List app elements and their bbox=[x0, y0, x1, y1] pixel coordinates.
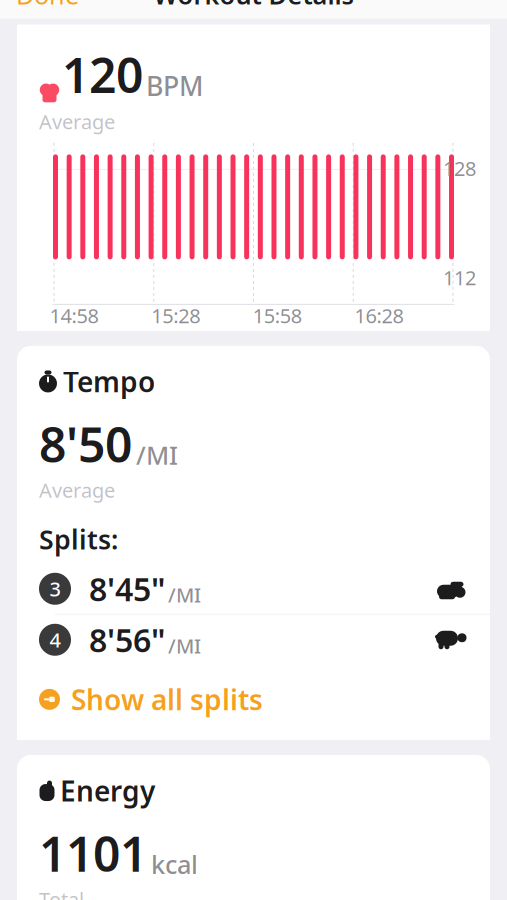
staticText: 15:28 bbox=[151, 302, 200, 329]
staticText: 8'56" bbox=[89, 618, 165, 661]
staticText: 16:28 bbox=[354, 302, 403, 329]
staticText: /MI bbox=[136, 438, 178, 472]
staticText: Total bbox=[39, 886, 84, 900]
staticText: 4 bbox=[49, 626, 60, 653]
staticText: 3 bbox=[49, 575, 60, 602]
staticText: Average bbox=[39, 477, 115, 503]
staticText: Tempo bbox=[63, 363, 155, 400]
staticText: Done bbox=[16, 0, 79, 11]
staticText: 128 bbox=[443, 155, 476, 181]
staticText: 1101 bbox=[39, 821, 147, 885]
button[interactable]: 4 bbox=[17, 615, 490, 665]
staticText: 120 bbox=[62, 43, 143, 106]
staticText: /MI bbox=[168, 581, 201, 608]
staticText: /MI bbox=[168, 632, 201, 659]
staticText: 8'45" bbox=[89, 567, 165, 610]
staticText: 112 bbox=[443, 264, 476, 291]
staticText: Energy bbox=[60, 772, 155, 809]
staticText: Workout Details bbox=[153, 0, 353, 11]
staticText: Splits: bbox=[39, 521, 118, 557]
staticText: 14:58 bbox=[49, 302, 98, 329]
staticText: kcal bbox=[151, 847, 198, 881]
staticText: 15:58 bbox=[253, 302, 302, 329]
button[interactable]: Done bbox=[0, 0, 95, 19]
staticText: BPM bbox=[146, 68, 203, 103]
staticText: Average bbox=[39, 108, 115, 135]
button[interactable]: Show all splits bbox=[17, 665, 490, 740]
button[interactable]: 3 bbox=[17, 564, 490, 614]
staticText: 8'50 bbox=[39, 412, 132, 476]
staticText: Show all splits bbox=[71, 681, 263, 718]
